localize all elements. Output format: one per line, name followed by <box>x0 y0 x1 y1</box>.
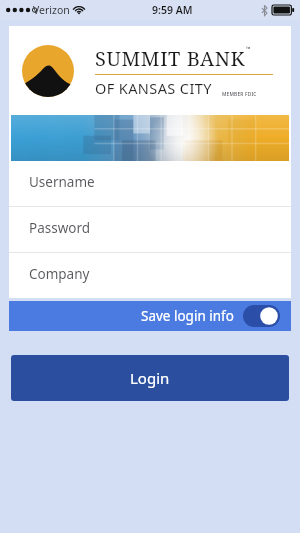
staticText: OF KANSAS CITY <box>95 78 212 98</box>
staticText: Password <box>29 219 91 237</box>
staticText: Save login info <box>141 307 234 325</box>
staticText: Username <box>29 173 95 191</box>
button[interactable]: Company <box>9 253 291 298</box>
button[interactable]: Save login info <box>9 301 291 331</box>
button[interactable]: Password <box>9 207 291 252</box>
button[interactable]: Login <box>11 355 289 401</box>
staticText: SUMMIT BANK <box>95 45 246 72</box>
staticText: 9:59 AM <box>152 3 193 17</box>
staticText: MEMBER FDIC <box>222 91 257 98</box>
staticText: Login <box>130 368 170 388</box>
button[interactable]: Username <box>9 161 291 206</box>
staticText: ™ <box>246 45 251 53</box>
staticText: Company <box>29 265 90 283</box>
staticText: Verizon <box>33 3 70 17</box>
other: Save login info toggle <box>243 305 280 327</box>
